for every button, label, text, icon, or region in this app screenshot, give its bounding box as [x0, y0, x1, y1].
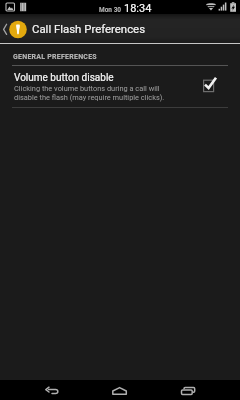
- button[interactable]: Volume button disable: [0, 66, 240, 108]
- button[interactable]: Back: [23, 380, 83, 400]
- button[interactable]: Recent apps: [157, 380, 217, 400]
- button[interactable]: Navigate up: [0, 14, 240, 44]
- staticText: Volume button disable: [14, 72, 114, 84]
- staticText: Call Flash Preferences: [32, 22, 146, 35]
- button[interactable]: Home: [90, 380, 150, 400]
- other: Navigate up: [0, 14, 30, 44]
- staticText: Mon 30: [99, 6, 122, 14]
- staticText: GENERAL PREFERENCES: [13, 53, 97, 61]
- staticText: Clicking the volume buttons during a cal…: [14, 84, 174, 102]
- staticText: 18:34: [124, 2, 152, 15]
